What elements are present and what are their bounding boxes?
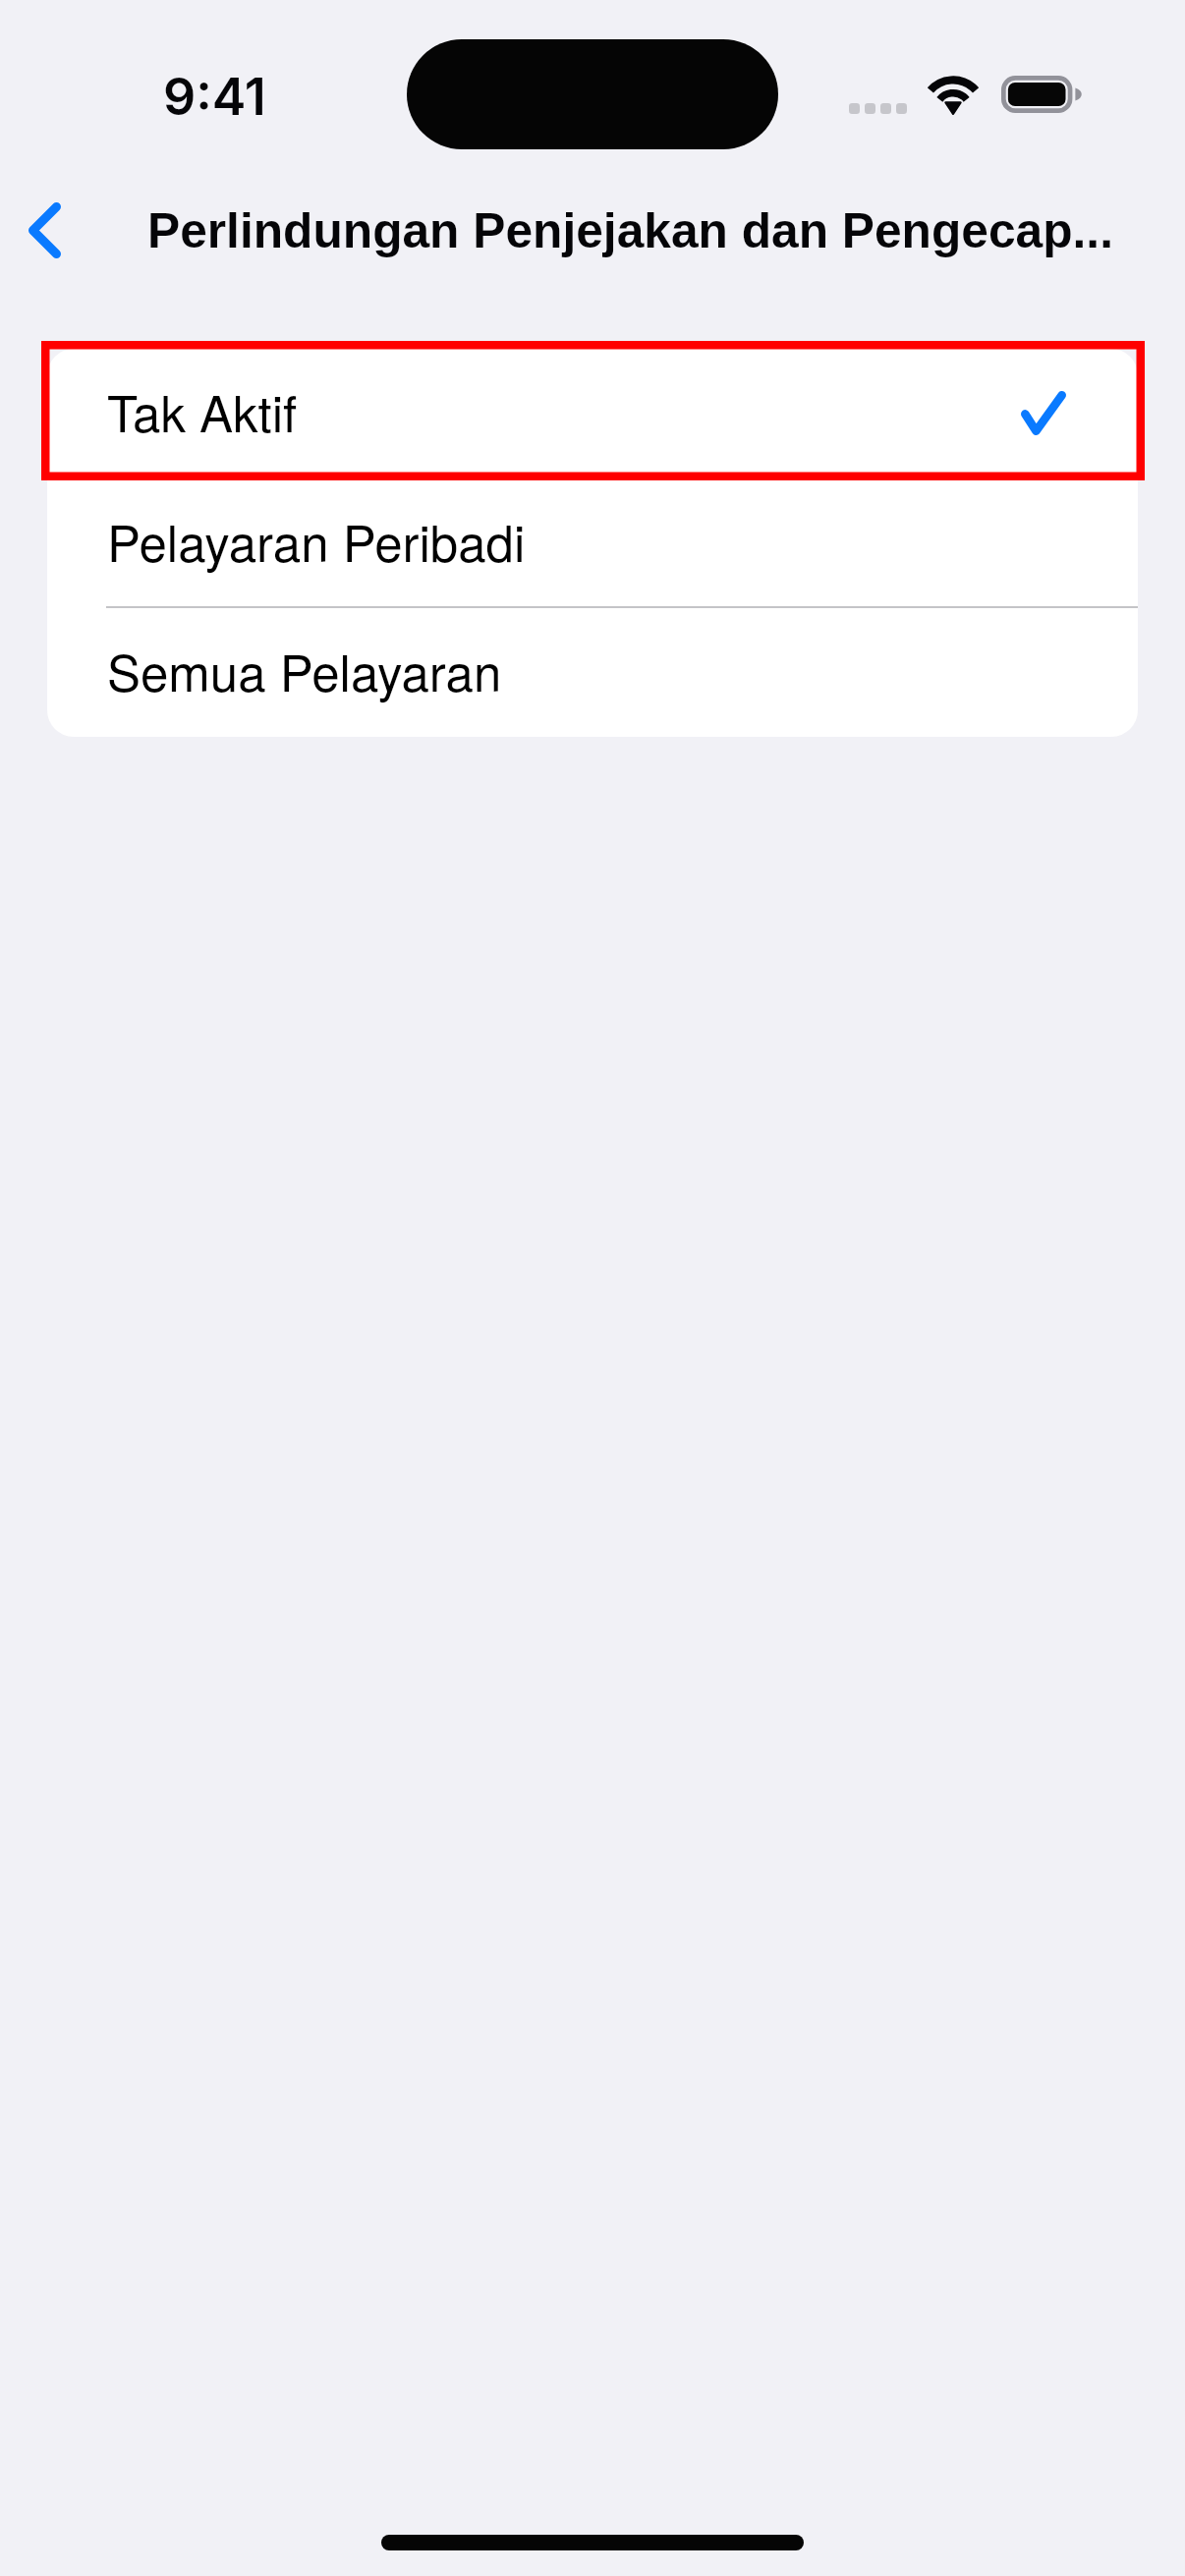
button[interactable]: Tak Aktif xyxy=(47,349,1138,478)
staticText: Semua Pelayaran xyxy=(107,634,502,705)
button[interactable]: Back xyxy=(0,175,99,285)
staticText: Pelayaran Peribadi xyxy=(107,504,526,576)
button[interactable]: Pelayaran Peribadi xyxy=(47,478,1138,608)
button[interactable]: Semua Pelayaran xyxy=(47,608,1138,737)
staticText: Tak Aktif xyxy=(107,374,298,446)
staticText: Perlindungan Penjejakan dan Pengecap... xyxy=(147,203,1113,258)
staticText: 9:41 xyxy=(163,66,266,128)
